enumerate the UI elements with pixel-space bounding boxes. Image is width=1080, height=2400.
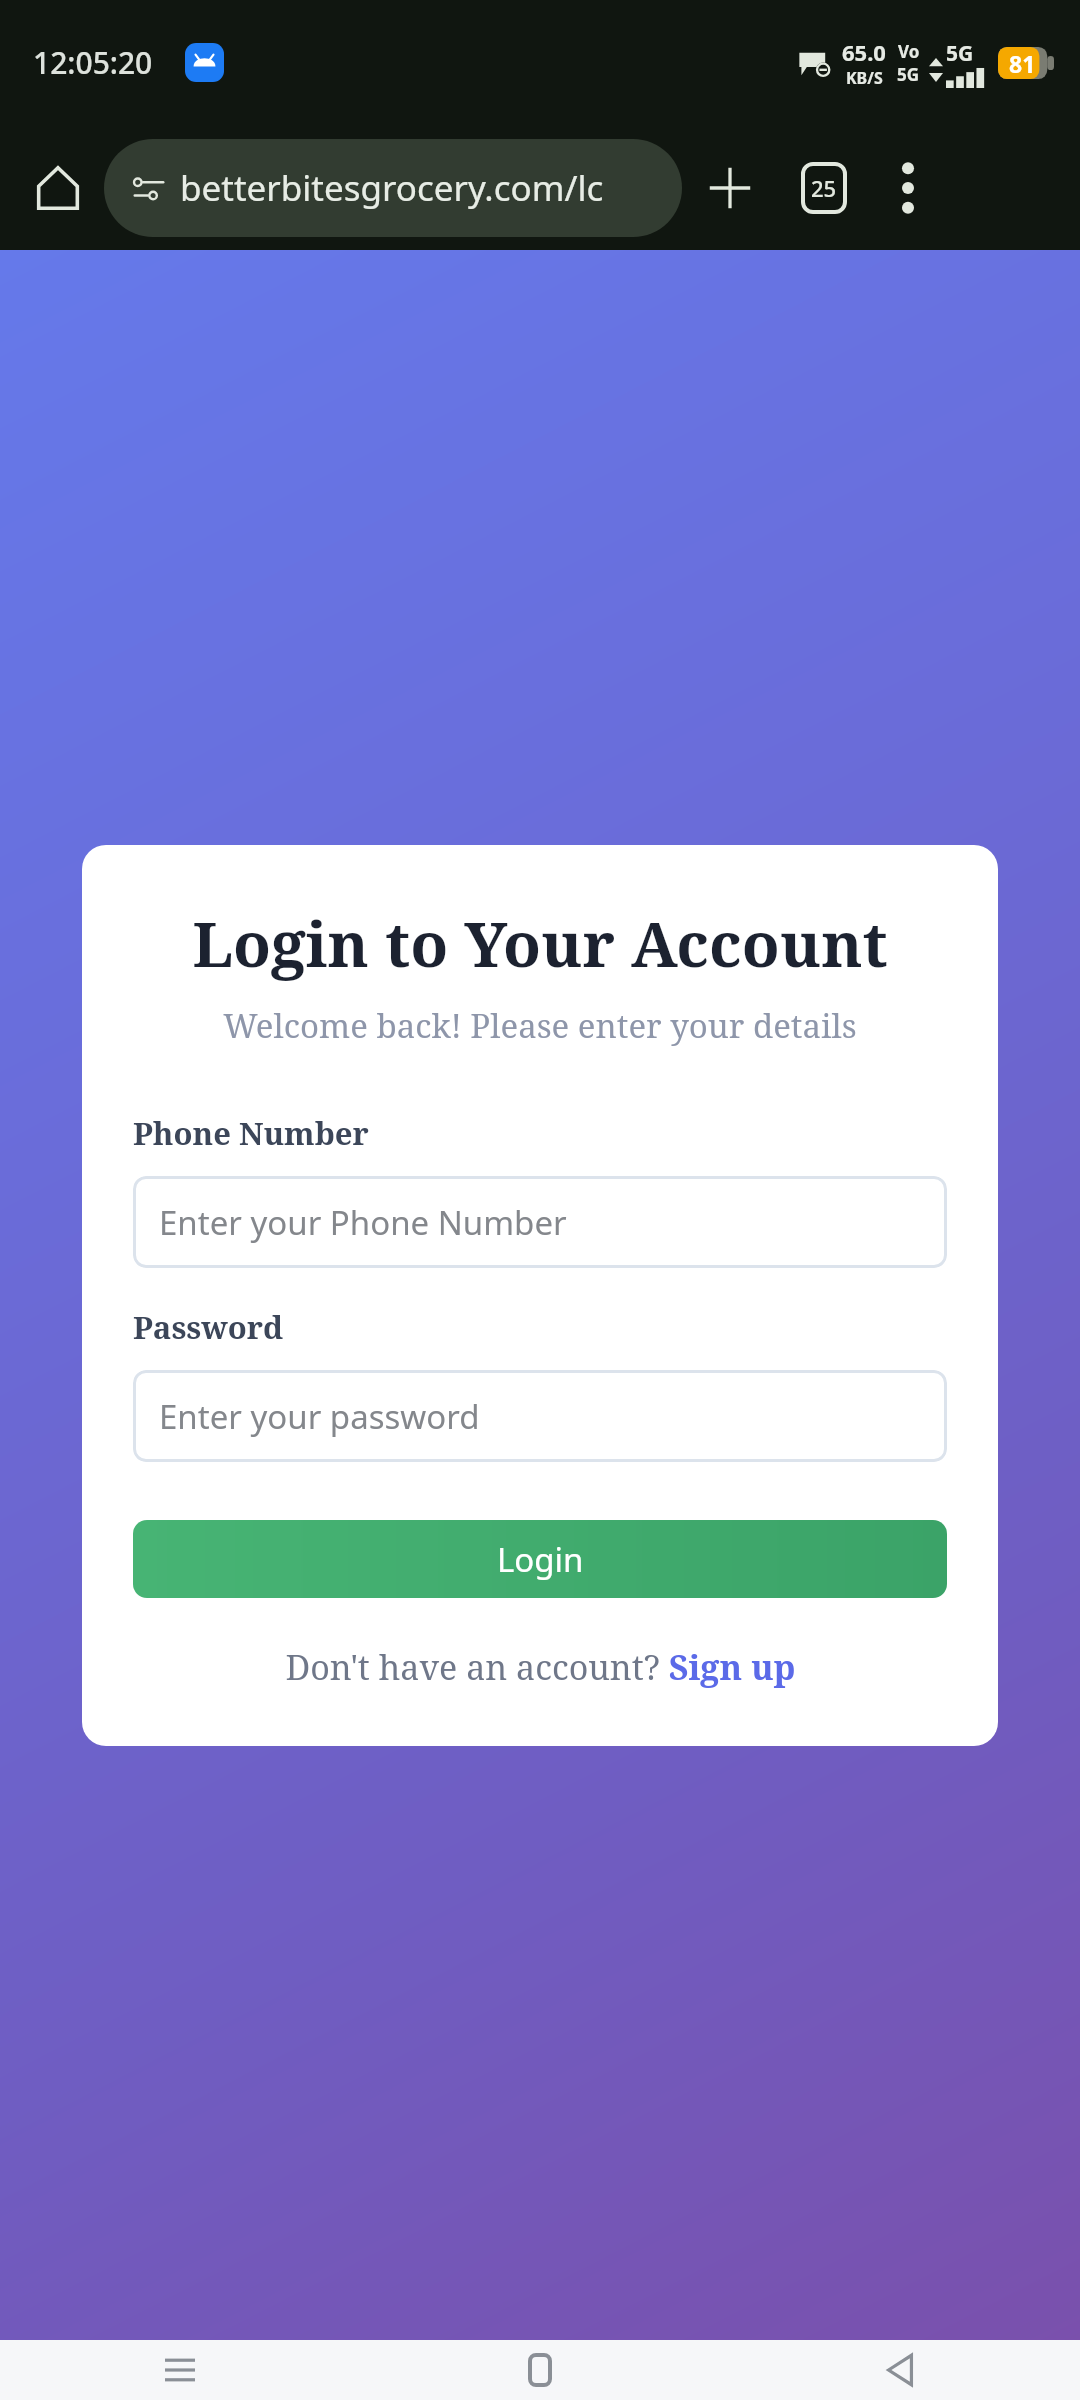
button[interactable]: Back [720, 2340, 1080, 2400]
button[interactable]: Home [20, 143, 96, 233]
button[interactable]: New tab [688, 143, 772, 233]
button[interactable]: Recent apps [0, 2340, 360, 2400]
button[interactable]: Don't have an account? Sign up [133, 1644, 947, 1690]
button[interactable]: Enter your Phone Number [133, 1176, 947, 1268]
staticText: Login [497, 1537, 584, 1582]
staticText: KB/S [846, 67, 883, 89]
staticText: 65.0 [842, 37, 886, 67]
staticText: Enter your password [159, 1394, 480, 1439]
staticText: Don't have an account? Sign up [285, 1644, 796, 1690]
staticText: Welcome back! Please enter your details [133, 1003, 947, 1048]
button[interactable]: Login [133, 1520, 947, 1598]
staticText: Login to Your Account [133, 901, 947, 985]
staticText: Enter your Phone Number [159, 1200, 567, 1245]
button[interactable]: More options [872, 143, 944, 233]
button[interactable]: Enter your password [133, 1370, 947, 1462]
staticText: betterbitesgrocery.com/lc [180, 164, 604, 212]
staticText: 5G [897, 63, 920, 86]
staticText: Password [133, 1306, 284, 1348]
staticText: 12:05:20 [33, 42, 153, 83]
staticText: 5G [946, 39, 974, 68]
staticText: Phone Number [133, 1112, 369, 1154]
staticText: 81 [1009, 48, 1036, 79]
staticText: Vo [898, 40, 920, 63]
button[interactable]: Home [360, 2340, 720, 2400]
staticText: 25 [811, 173, 837, 203]
button[interactable]: betterbitesgrocery.com/lc [104, 139, 682, 237]
button[interactable]: Tabs [782, 143, 866, 233]
